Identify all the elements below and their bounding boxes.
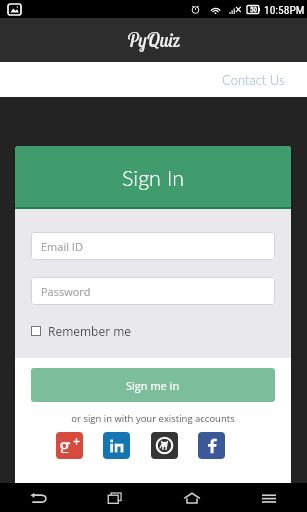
staticText: Sign In — [122, 165, 185, 191]
staticText: Remember me — [48, 323, 132, 339]
button[interactable]: Menu — [230, 483, 307, 512]
button[interactable]: Contact Us — [200, 62, 307, 97]
button[interactable]: Back — [0, 483, 76, 512]
button[interactable]: Sign me in — [31, 368, 275, 402]
button[interactable]: Home — [153, 483, 230, 512]
staticText: or sign in with your existing accounts — [31, 412, 275, 425]
button[interactable]: Sign in with LinkedIn — [103, 432, 130, 459]
staticText: Password — [41, 284, 91, 299]
button[interactable]: Email ID — [31, 232, 275, 260]
staticText: g — [59, 432, 71, 453]
staticText: 10:58PM — [264, 3, 305, 16]
button[interactable]: Recent apps — [76, 483, 153, 512]
button[interactable]: Sign in with Facebook — [198, 432, 225, 459]
button[interactable]: Sign in with GitHub — [151, 432, 178, 459]
button[interactable]: Remember me — [31, 320, 132, 342]
staticText: Contact Us — [222, 72, 285, 88]
staticText: 50 — [250, 6, 257, 14]
button[interactable]: Sign in with Google Plus — [56, 432, 83, 459]
staticText: Sign me in — [126, 378, 180, 393]
staticText: PyQuiz — [127, 28, 180, 52]
button[interactable]: Password — [31, 277, 275, 305]
staticText: Email ID — [41, 239, 83, 254]
